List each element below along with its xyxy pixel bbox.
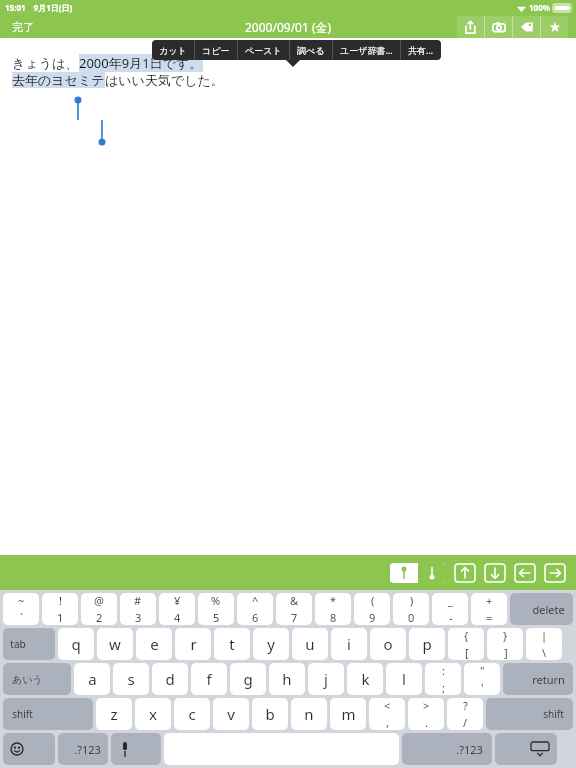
button[interactable]: i (331, 628, 367, 660)
button[interactable] (3, 733, 55, 765)
button[interactable]: < (369, 698, 405, 730)
button[interactable]: Next field (418, 563, 446, 583)
button[interactable]: n (291, 698, 327, 730)
button[interactable]: 完了 (8, 16, 38, 38)
button[interactable]: Tag (513, 16, 540, 38)
staticText: ] (504, 645, 508, 660)
button[interactable]: e (136, 628, 172, 660)
button[interactable]: f (191, 663, 227, 695)
button[interactable]: 調べる (290, 40, 332, 60)
staticText: u (305, 634, 315, 654)
button[interactable]: b (252, 698, 288, 730)
staticText: tab (10, 637, 26, 651)
staticText: 3 (135, 610, 142, 625)
button[interactable]: l (386, 663, 422, 695)
button[interactable]: shift (486, 698, 573, 730)
button[interactable]: Favorite (541, 16, 568, 38)
button[interactable]: ? (447, 698, 483, 730)
staticText: [ (465, 645, 469, 660)
button[interactable] (495, 733, 557, 765)
staticText: はいい天気でした。 (105, 72, 224, 88)
button[interactable]: Camera (485, 16, 512, 38)
staticText: p (422, 634, 432, 654)
button[interactable]: @ (81, 593, 117, 625)
button[interactable]: Move up (454, 563, 476, 583)
button[interactable]: Move right (544, 563, 566, 583)
staticText: shift (12, 707, 33, 721)
button[interactable]: & (276, 593, 312, 625)
button[interactable]: % (198, 593, 234, 625)
button[interactable]: ( (354, 593, 390, 625)
staticText: ^ (252, 593, 259, 608)
button[interactable]: | (526, 628, 562, 660)
button[interactable]: delete (510, 593, 573, 625)
button[interactable]: shift (3, 698, 93, 730)
button[interactable]: s (113, 663, 149, 695)
button[interactable]: > (408, 698, 444, 730)
button[interactable]: a (74, 663, 110, 695)
button[interactable]: .?123 (58, 733, 108, 765)
button[interactable]: z (96, 698, 132, 730)
button[interactable]: Share (457, 16, 484, 38)
button[interactable]: ) (393, 593, 429, 625)
button[interactable]: w (97, 628, 133, 660)
staticText: + (486, 593, 493, 608)
staticText: r (190, 634, 197, 654)
button[interactable] (111, 733, 161, 765)
button[interactable]: j (308, 663, 344, 695)
button[interactable]: + (471, 593, 507, 625)
button[interactable]: return (503, 663, 573, 695)
button[interactable]: .?123 (402, 733, 492, 765)
button[interactable]: カット (152, 40, 194, 60)
button[interactable]: tab (3, 628, 55, 660)
button[interactable]: コピー (195, 40, 237, 60)
button[interactable]: o (370, 628, 406, 660)
button[interactable]: _ (432, 593, 468, 625)
button[interactable]: Move down (484, 563, 506, 583)
button[interactable]: x (135, 698, 171, 730)
button[interactable]: k (347, 663, 383, 695)
staticText: x (149, 704, 157, 724)
button[interactable]: ~ (3, 593, 39, 625)
button[interactable]: : (425, 663, 461, 695)
staticText: q (71, 634, 81, 654)
button[interactable]: q (58, 628, 94, 660)
button[interactable]: ^ (237, 593, 273, 625)
staticText: コピー (202, 45, 230, 56)
button[interactable]: ! (42, 593, 78, 625)
staticText: 2000年9月1日です。 (79, 54, 203, 72)
button[interactable]: ユーザ辞書... (333, 40, 400, 60)
button[interactable]: Previous field (390, 563, 418, 583)
staticText: 6 (252, 610, 259, 625)
button[interactable]: r (175, 628, 211, 660)
button[interactable]: * (315, 593, 351, 625)
button[interactable]: あいう (3, 663, 71, 695)
button[interactable]: ペースト (238, 40, 289, 60)
staticText: w (109, 634, 121, 654)
button[interactable]: m (330, 698, 366, 730)
staticText: あいう (12, 673, 43, 686)
staticText: " (480, 663, 485, 678)
button[interactable]: ¥ (159, 593, 195, 625)
button[interactable]: h (269, 663, 305, 695)
staticText: 0 (408, 610, 415, 625)
button[interactable]: c (174, 698, 210, 730)
staticText: 8 (330, 610, 337, 625)
button[interactable]: v (213, 698, 249, 730)
button[interactable]: { (448, 628, 484, 660)
button[interactable]: # (120, 593, 156, 625)
button[interactable]: u (292, 628, 328, 660)
staticText: - (449, 610, 453, 625)
button[interactable]: " (464, 663, 500, 695)
button[interactable]: g (230, 663, 266, 695)
button[interactable]: Move left (514, 563, 536, 583)
button[interactable]: p (409, 628, 445, 660)
button[interactable]: y (253, 628, 289, 660)
button[interactable]: 共有... (401, 40, 441, 60)
staticText: 調べる (297, 45, 325, 56)
button[interactable]: } (487, 628, 523, 660)
staticText: 9 (369, 610, 376, 625)
button[interactable]: t (214, 628, 250, 660)
button[interactable]: d (152, 663, 188, 695)
